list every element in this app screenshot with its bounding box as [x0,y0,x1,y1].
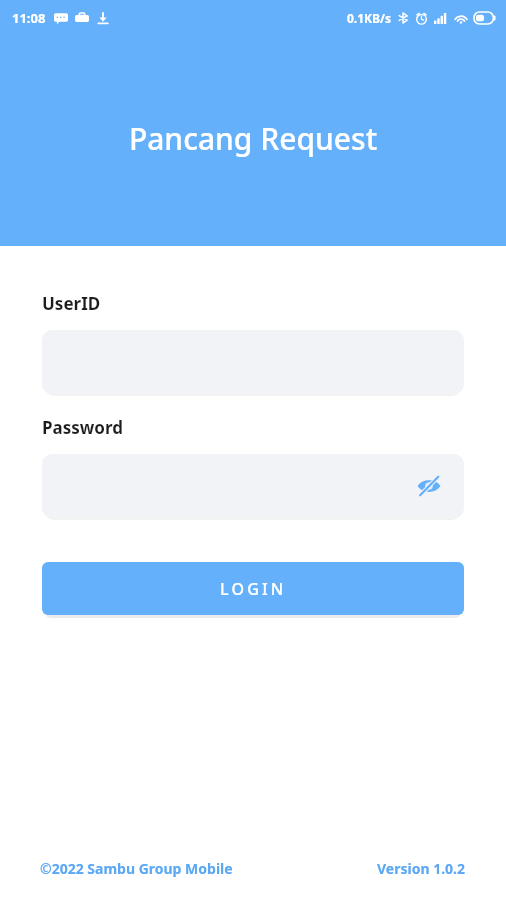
staticText: Pancang Request [0,118,506,159]
staticText: LOGIN [220,578,287,600]
button[interactable]: LOGIN [42,562,464,615]
staticText: UserID [42,292,101,315]
button[interactable]: Toggle password visibility [412,469,446,503]
button[interactable]: Toggle password visibility [42,454,464,518]
staticText: 0.1KB/s [347,10,392,26]
staticText: 11:08 [12,9,46,27]
staticText: Password [42,416,123,439]
staticText: Version 1.0.2 [377,859,466,878]
staticText: ©2022 Sambu Group Mobile [40,859,233,878]
